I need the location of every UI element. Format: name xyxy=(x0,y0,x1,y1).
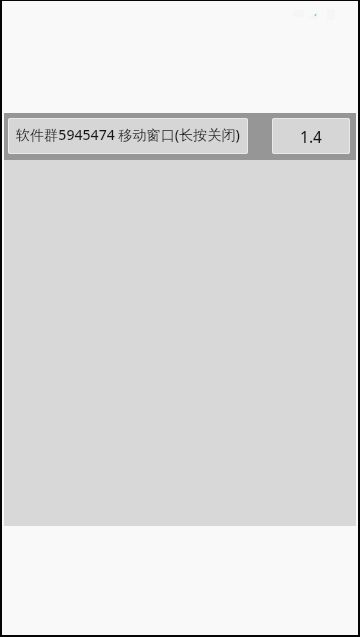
button[interactable]: 版本 1.4 xyxy=(272,118,350,154)
button[interactable]: 移动窗口，长按关闭 xyxy=(8,118,248,154)
staticText: 软件群5945474 移动窗口(长按关闭) xyxy=(16,125,240,144)
staticText: 1.4 xyxy=(300,127,322,148)
